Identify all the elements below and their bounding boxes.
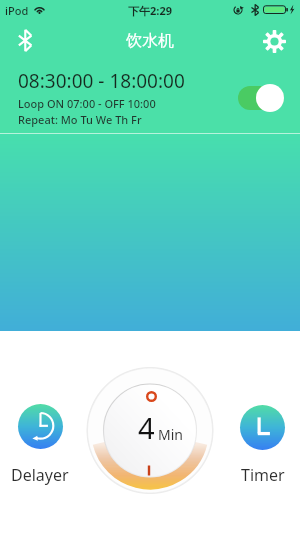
staticText: 下午2:29 <box>128 3 172 18</box>
staticText: 饮水机 <box>126 31 174 51</box>
staticText: Timer <box>241 464 285 486</box>
button[interactable]: Schedule enabled <box>238 84 284 112</box>
staticText: Repeat: Mo Tu We Th Fr <box>18 112 142 127</box>
staticText: 08:30:00 - 18:00:00 <box>18 68 185 94</box>
button[interactable]: Timer <box>240 405 285 450</box>
staticText: Delayer <box>11 464 69 486</box>
button[interactable]: Bluetooth <box>9 25 41 57</box>
staticText: 4 <box>138 408 155 447</box>
button[interactable]: Settings <box>258 25 290 57</box>
staticText: Loop ON 07:00 - OFF 10:00 <box>18 96 156 111</box>
staticText: Min <box>158 425 183 444</box>
button[interactable]: 08:30:00 - 18:00:00 <box>0 61 300 134</box>
staticText: iPod <box>5 3 29 18</box>
button[interactable]: Delayer <box>18 404 63 449</box>
button[interactable]: Timer dial 4 minutes <box>85 364 215 494</box>
